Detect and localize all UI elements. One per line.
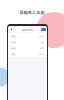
button[interactable]: Save (41, 28, 46, 31)
staticText: 保单号 (11, 35, 17, 37)
staticText: 8801 (39, 35, 44, 38)
staticText: 李红 (40, 47, 44, 49)
button[interactable]: Back (8, 26, 14, 32)
staticText: 保额 (11, 53, 15, 55)
staticText: 被保人 (11, 47, 17, 49)
staticText: 投保人 (11, 41, 17, 43)
button[interactable]: 被保人 (8, 45, 47, 51)
staticText: 张明 (40, 41, 44, 43)
staticText: 保单详情 (22, 28, 33, 31)
button[interactable]: 保额 (8, 51, 47, 57)
staticText: 保险单工具箱 (19, 10, 45, 15)
button[interactable]: 保单号 (8, 33, 47, 39)
staticText: 50万 (39, 53, 44, 56)
button[interactable]: 投保人 (8, 39, 47, 45)
